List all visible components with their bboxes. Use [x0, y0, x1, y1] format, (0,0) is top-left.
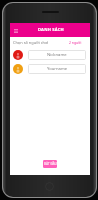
button[interactable]: Avatar — [13, 64, 23, 74]
staticText: Nickname — [47, 52, 67, 58]
staticText: BẮT ĐẦU — [44, 162, 57, 166]
button[interactable]: Avatar — [13, 50, 23, 60]
button[interactable]: BẮT ĐẦU — [43, 160, 57, 168]
button[interactable]: 2 người — [66, 40, 84, 46]
staticText: DANH SÁCH — [38, 27, 64, 33]
button[interactable]: Menu — [11, 26, 20, 35]
staticText: 2 người — [69, 40, 82, 45]
staticText: Chọn số người chơi — [13, 40, 49, 45]
button[interactable]: Yourname — [28, 64, 86, 74]
staticText: Yourname — [47, 66, 68, 72]
button[interactable]: Nickname — [28, 50, 86, 60]
